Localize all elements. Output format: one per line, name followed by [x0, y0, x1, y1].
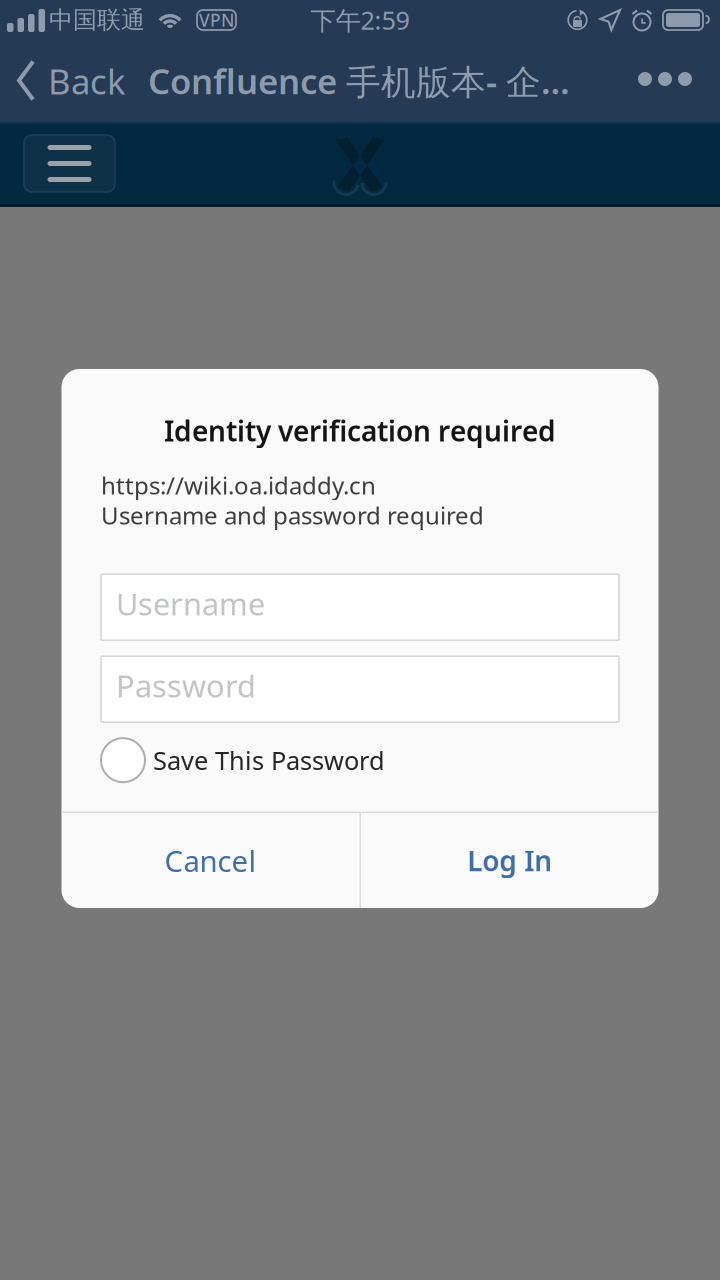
button[interactable]: Back: [0, 40, 132, 122]
staticText: https://wiki.oa.idaddy.cn: [101, 469, 376, 501]
staticText: Save This Password: [153, 743, 385, 777]
staticText: Log In: [467, 842, 552, 879]
staticText: Confluence 手机版本- 企…: [148, 58, 570, 104]
button[interactable]: Username: [101, 574, 619, 640]
button[interactable]: Cancel: [61, 813, 359, 908]
staticText: Username and password required: [101, 499, 484, 531]
staticText: VPN: [199, 8, 234, 31]
button[interactable]: More options: [614, 40, 720, 122]
staticText: Username: [116, 583, 265, 624]
staticText: 中国联通: [49, 5, 145, 35]
staticText: Cancel: [164, 841, 256, 880]
button[interactable]: Save This Password: [101, 738, 619, 782]
button[interactable]: Log In: [361, 813, 658, 908]
staticText: Identity verification required: [164, 412, 556, 449]
button[interactable]: Password: [101, 656, 619, 722]
staticText: Back: [48, 58, 126, 104]
staticText: 下午2:59: [310, 3, 409, 37]
button[interactable]: Menu: [24, 135, 115, 192]
staticText: Password: [116, 665, 256, 706]
